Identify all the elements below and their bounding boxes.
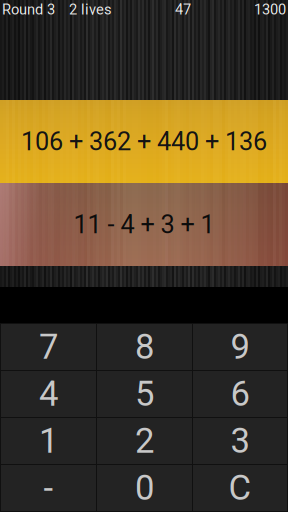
button[interactable]: 0 [97,465,192,511]
staticText: 8 [135,327,154,367]
button[interactable]: C [193,465,287,511]
button[interactable]: 5 [97,371,192,417]
staticText: 7 [39,327,58,367]
button[interactable]: 1 [1,418,96,464]
button[interactable]: 6 [193,371,287,417]
staticText: 0 [135,468,154,508]
staticText: 1 [39,421,58,461]
button[interactable]: 8 [97,324,192,370]
staticText: 11 - 4 + 3 + 1 [73,210,214,239]
staticText: 2 lives [69,1,112,18]
button[interactable]: 3 [193,418,287,464]
staticText: 3 [230,421,249,461]
staticText: 4 [39,374,58,414]
staticText: 1300 [254,1,286,18]
staticText: Round 3 [2,1,55,18]
staticText: - [43,468,53,508]
button[interactable]: 7 [1,324,96,370]
staticText: 9 [230,327,249,367]
button[interactable]: 9 [193,324,287,370]
staticText: 2 [135,421,154,461]
staticText: 6 [230,374,249,414]
button[interactable]: 4 [1,371,96,417]
staticText: 47 [175,1,191,18]
staticText: 106 + 362 + 440 + 136 [21,127,267,156]
staticText: C [228,468,251,508]
button[interactable]: - [1,465,96,511]
staticText: 5 [135,374,154,414]
button[interactable]: 2 [97,418,192,464]
